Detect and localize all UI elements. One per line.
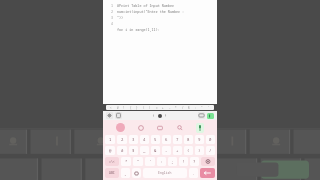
- button[interactable]: 5: [151, 135, 160, 144]
- staticText: 3: [111, 15, 114, 21]
- button[interactable]: Voice input: [196, 123, 204, 133]
- staticText: #: [117, 106, 119, 110]
- staticText: English: [158, 171, 172, 175]
- staticText: ": [201, 106, 203, 110]
- staticText: :: [195, 106, 197, 110]
- button[interactable]: {: [130, 106, 132, 110]
- staticText: +: [162, 106, 164, 110]
- button[interactable]: 9: [195, 135, 204, 144]
- staticText: 7: [176, 137, 179, 142]
- staticText: #Print Table of Input Number: [117, 3, 174, 8]
- staticText: (: [187, 148, 190, 153]
- button[interactable]: 6: [162, 135, 171, 144]
- button[interactable]: ;: [168, 157, 177, 166]
- staticText: for i in range(1,11):: [117, 27, 160, 32]
- staticText: (: [143, 106, 145, 110]
- button[interactable]: /: [206, 146, 215, 155]
- button[interactable]: ): [149, 106, 151, 110]
- button[interactable]: #: [117, 106, 119, 110]
- staticText: +: [176, 148, 179, 153]
- button[interactable]: !: [179, 157, 188, 166]
- button[interactable]: $: [129, 146, 138, 155]
- button[interactable]: #: [117, 146, 127, 155]
- staticText: ABC: [109, 171, 115, 175]
- button[interactable]: ?: [190, 157, 199, 166]
- staticText: ;: [171, 159, 174, 164]
- button[interactable]: Search: [176, 124, 184, 132]
- staticText: =\<: [109, 160, 115, 164]
- staticText: ")): [117, 15, 124, 20]
- button[interactable]: 8: [184, 135, 193, 144]
- button[interactable]: 2: [117, 135, 127, 144]
- staticText: ": [137, 159, 140, 164]
- button[interactable]: ABC: [105, 168, 119, 178]
- button[interactable]: ›: [164, 112, 168, 119]
- staticText: *: [125, 159, 128, 164]
- button[interactable]: .: [189, 168, 198, 178]
- button[interactable]: ‹: [152, 112, 156, 119]
- staticText: num=int(input("Enter the Number :: [117, 9, 185, 14]
- button[interactable]: +: [162, 106, 164, 110]
- button[interactable]: Keyboard: [198, 112, 205, 119]
- staticText: 3: [132, 137, 135, 142]
- button[interactable]: +: [173, 146, 182, 155]
- button[interactable]: =\<: [105, 157, 119, 166]
- button[interactable]: (: [143, 106, 145, 110]
- button[interactable]: :: [157, 157, 166, 166]
- button[interactable]: Cursor: [158, 114, 162, 118]
- staticText: .: [192, 171, 195, 176]
- button[interactable]: -: [169, 106, 171, 110]
- button[interactable]: ": [201, 106, 203, 110]
- button[interactable]: _: [140, 146, 149, 155]
- button[interactable]: *: [121, 157, 131, 166]
- staticText: !: [123, 106, 125, 110]
- button[interactable]: %: [188, 106, 190, 110]
- button[interactable]: ': [145, 157, 155, 166]
- staticText: ': [149, 159, 152, 164]
- button[interactable]: GIF: [156, 124, 164, 132]
- staticText: {: [130, 106, 132, 110]
- button[interactable]: Emoji: [137, 124, 145, 132]
- button[interactable]: Settings: [106, 112, 113, 119]
- button[interactable]: !: [123, 106, 125, 110]
- button[interactable]: Run: [207, 113, 214, 119]
- staticText: 0: [209, 137, 212, 142]
- button[interactable]: -: [162, 146, 171, 155]
- button[interactable]: *: [175, 106, 177, 110]
- staticText: 6: [165, 137, 168, 142]
- button[interactable]: 3: [129, 135, 138, 144]
- button[interactable]: Backspace: [201, 157, 215, 166]
- button[interactable]: /: [182, 106, 184, 110]
- staticText: /: [182, 106, 184, 110]
- staticText: *: [175, 106, 177, 110]
- button[interactable]: Enter: [200, 168, 215, 178]
- button[interactable]: Switch keyboard: [132, 168, 141, 178]
- staticText: ?: [193, 159, 196, 164]
- button[interactable]: Clipboard: [115, 112, 122, 119]
- button[interactable]: 7: [173, 135, 182, 144]
- button[interactable]: ,: [121, 168, 130, 178]
- staticText: =: [156, 106, 158, 110]
- button[interactable]: 0: [206, 135, 215, 144]
- button[interactable]: Stickers: [116, 123, 125, 132]
- staticText: ): [149, 106, 151, 110]
- button[interactable]: 4: [140, 135, 149, 144]
- staticText: 5: [154, 137, 157, 142]
- staticText: /: [209, 148, 212, 153]
- button[interactable]: (: [184, 146, 193, 155]
- button[interactable]: ': [208, 106, 210, 110]
- button[interactable]: 1: [105, 135, 115, 144]
- button[interactable]: =: [156, 106, 158, 110]
- button[interactable]: :: [195, 106, 197, 110]
- staticText: 9: [198, 137, 201, 142]
- staticText: 1: [109, 137, 112, 142]
- button[interactable]: English: [143, 168, 187, 178]
- button[interactable]: @: [105, 146, 115, 155]
- button[interactable]: &: [151, 146, 160, 155]
- staticText: ': [208, 106, 210, 110]
- button[interactable]: ": [133, 157, 143, 166]
- button[interactable]: }: [136, 106, 138, 110]
- button[interactable]: ): [195, 146, 204, 155]
- button[interactable]: <: [110, 106, 112, 110]
- staticText: 1: [111, 3, 114, 9]
